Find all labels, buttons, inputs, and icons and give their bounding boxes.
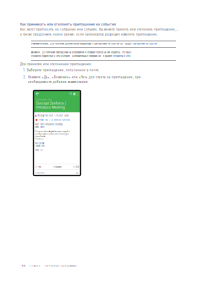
staticText: Add note … [35,171,47,174]
staticText: sending to all users, so it is fed to th… [35,133,69,135]
staticText: ⋮ [76,91,80,96]
button[interactable]: Share [68,91,72,96]
staticText: Best time [35,126,44,128]
staticText: ○ [53,165,55,168]
staticText: Maybe [55,165,61,168]
staticText: ПРИМЕЧАНИЕ. [31,42,49,45]
staticText: No [76,165,79,168]
staticText: Hall 10 / 3 Nord Office [39,118,69,121]
staticText: Thank you … [35,145,47,147]
staticText: Program this mailing, which is now arran… [35,130,70,132]
staticText: Thank you. [35,138,43,140]
staticText: Today 10:00 – 11:00 AM [37,114,68,117]
staticText: mycompany.com [36,99,52,101]
staticText: Для получения дополнительной информации … [50,42,131,45]
staticText: Нажмите «Да», «Возможно» или «Нет» для о… [28,75,141,79]
button[interactable]: More options [76,91,79,96]
button[interactable]: ○ [53,165,61,168]
staticText: Вас могут пригласить на собрание или соб… [20,28,178,31]
button[interactable]: ○ [73,165,79,168]
button[interactable]: Add to calendar [72,91,76,96]
staticText: Глава 3 Почтовые программы [25,264,76,267]
staticText: ◎ [76,171,79,174]
staticText: ○ [73,165,75,168]
staticText: ← [35,91,40,97]
staticText: ВАЖНО. [31,51,41,54]
staticText: ○ [35,165,37,168]
button[interactable]: Back [35,91,40,96]
button[interactable]: Send [76,171,79,174]
staticText: Приглашения на события. [132,42,158,45]
staticText: ◁ [69,92,72,96]
staticText: Yes [38,165,41,168]
staticText: До получения приглашений на мероприятия … [42,51,131,54]
staticText: Part Two Corporate meeting [35,123,62,126]
staticText: Sent To [35,149,42,151]
staticText: Устройства в сети. [113,55,131,58]
staticText: ▣ [73,92,76,96]
staticText: the schedule. [35,135,45,137]
staticText: 1. [23,69,25,72]
staticText: Для принятия или отклонения приглашения: [20,63,92,66]
staticText: а также предложить новое время, если орг… [20,33,158,36]
staticText: ◆ [35,118,38,121]
staticText: Как принимать или отклонять приглашения … [20,22,116,26]
staticText: 2. [23,75,26,79]
staticText: Introduce Meeting [36,105,65,109]
staticText: ▮ [35,114,36,117]
staticText: Concept Zenforce | [36,101,66,105]
button[interactable]: ○ [35,165,41,168]
staticText: 48 [21,264,25,267]
staticText: устройство подключено к сети Интернет. Д… [31,55,112,58]
staticText: My profile [35,142,44,145]
staticText: Выберите приглашение, полученное в почте… [27,69,100,72]
staticText: необходимости добавив комментарий. [28,80,89,84]
